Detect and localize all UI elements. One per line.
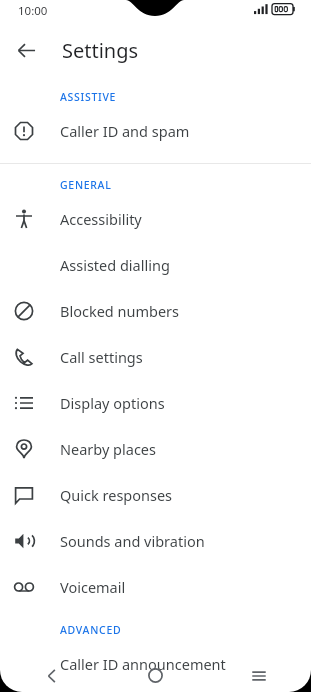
staticText: Settings xyxy=(62,37,139,64)
button[interactable]: Display options xyxy=(0,380,311,426)
staticText: Display options xyxy=(60,393,165,413)
button[interactable]: Quick responses xyxy=(0,472,311,518)
staticText: GENERAL xyxy=(60,178,112,192)
button[interactable]: Blocked numbers xyxy=(0,288,311,334)
button[interactable]: Call settings xyxy=(0,334,311,380)
staticText: ADVANCED xyxy=(60,623,122,637)
button[interactable]: Back xyxy=(9,33,43,67)
staticText: Quick responses xyxy=(60,485,173,505)
staticText: Call settings xyxy=(60,347,143,367)
staticText: Voicemail xyxy=(60,577,126,597)
staticText: Nearby places xyxy=(60,439,156,459)
staticText: Accessibility xyxy=(60,209,142,229)
button[interactable]: Assisted dialling xyxy=(0,242,311,288)
button[interactable]: Sounds and vibration xyxy=(0,518,311,564)
button[interactable]: Nearby places xyxy=(0,426,311,472)
button[interactable]: Accessibility xyxy=(0,196,311,242)
button[interactable]: Back xyxy=(0,659,103,692)
button[interactable]: Caller ID announcement xyxy=(0,641,311,687)
button[interactable]: Voicemail xyxy=(0,564,311,610)
staticText: Caller ID and spam xyxy=(60,121,190,141)
staticText: ASSISTIVE xyxy=(60,90,117,104)
staticText: Sounds and vibration xyxy=(60,531,205,551)
button[interactable]: Caller ID and spam xyxy=(0,108,311,154)
staticText: 10:00 xyxy=(18,3,48,19)
staticText: Blocked numbers xyxy=(60,301,180,321)
button[interactable]: Recent apps xyxy=(207,659,311,692)
staticText: Assisted dialling xyxy=(60,255,170,275)
button[interactable]: Home xyxy=(103,659,207,692)
staticText: Caller ID announcement xyxy=(60,654,226,674)
